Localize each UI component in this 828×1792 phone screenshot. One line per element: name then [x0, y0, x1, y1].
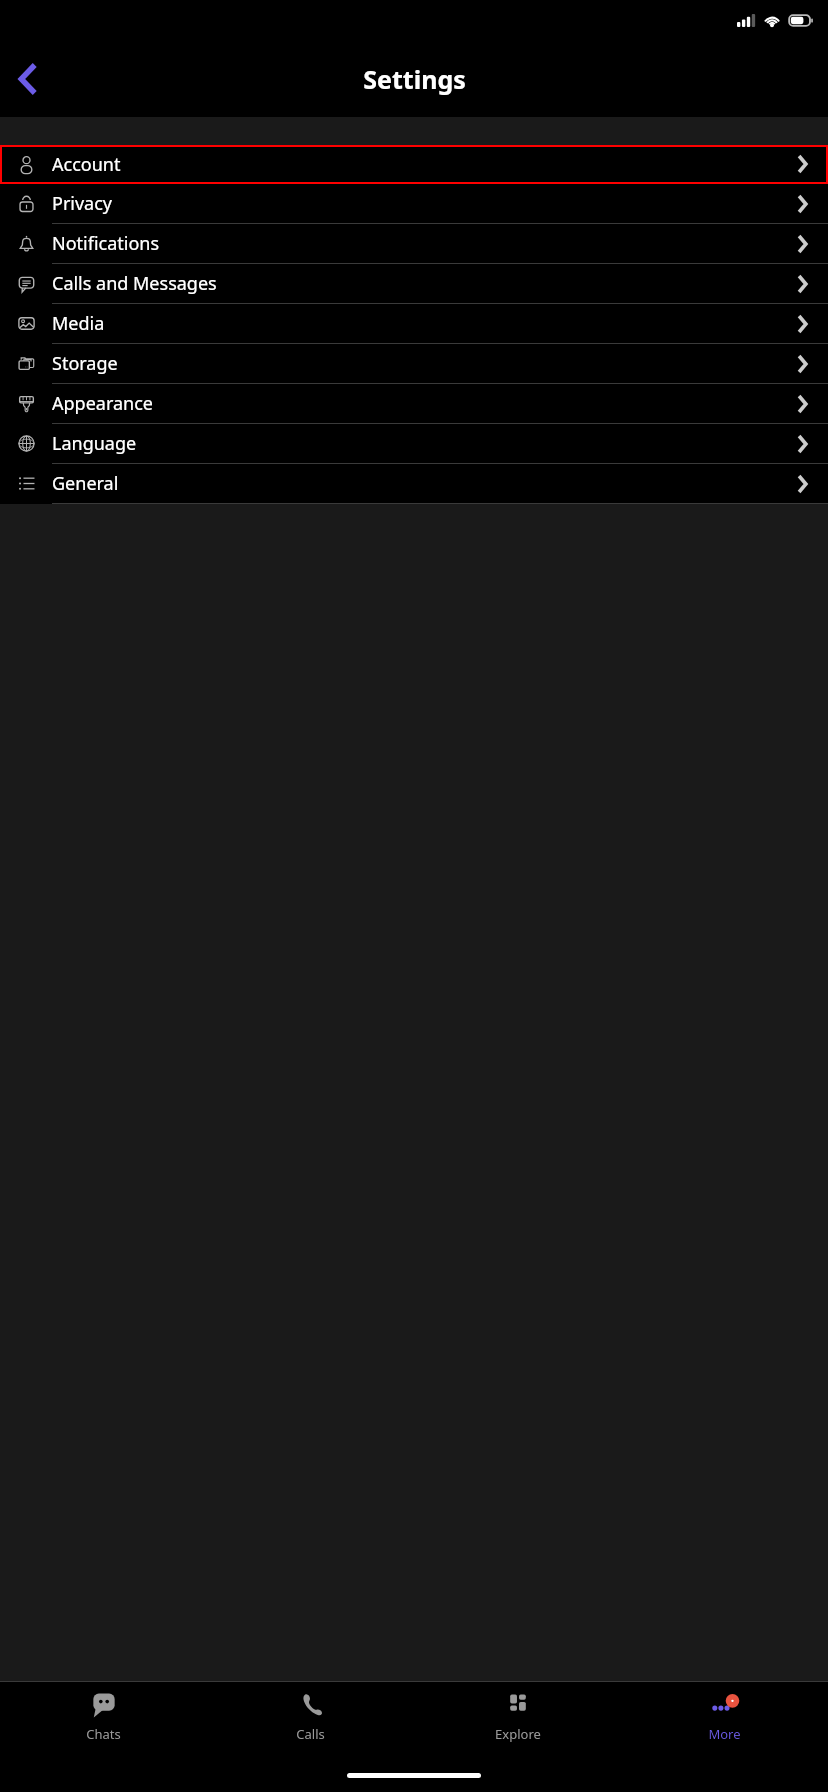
staticText: Appearance: [52, 391, 776, 416]
staticText: Storage: [52, 351, 776, 376]
button[interactable]: Media: [0, 304, 828, 344]
button[interactable]: Explore: [414, 1682, 621, 1758]
button[interactable]: Calls: [207, 1682, 414, 1758]
staticText: Settings: [363, 62, 466, 96]
staticText: General: [52, 471, 776, 496]
staticText: Notifications: [52, 231, 776, 256]
staticText: Explore: [495, 1725, 541, 1743]
button[interactable]: Storage: [0, 344, 828, 384]
button[interactable]: Chats: [0, 1682, 207, 1758]
button[interactable]: Calls and Messages: [0, 264, 828, 304]
button[interactable]: Notifications: [0, 224, 828, 264]
button[interactable]: Back: [0, 51, 56, 107]
staticText: Chats: [86, 1725, 121, 1743]
button[interactable]: Account: [0, 145, 828, 183]
button[interactable]: Appearance: [0, 384, 828, 424]
staticText: Privacy: [52, 191, 776, 216]
staticText: Language: [52, 431, 776, 456]
button[interactable]: General: [0, 464, 828, 504]
button[interactable]: Privacy: [0, 184, 828, 224]
staticText: Media: [52, 311, 776, 336]
staticText: Calls: [296, 1725, 325, 1743]
staticText: Account: [52, 152, 776, 177]
button[interactable]: Language: [0, 424, 828, 464]
staticText: Calls and Messages: [52, 271, 776, 296]
staticText: More: [708, 1725, 741, 1743]
button[interactable]: More: [621, 1682, 828, 1758]
